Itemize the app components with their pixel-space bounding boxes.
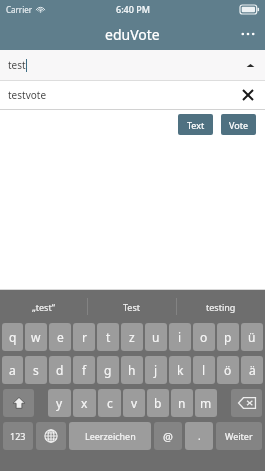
- staticText: u: [152, 329, 160, 345]
- staticText: b: [154, 395, 162, 411]
- staticText: Test: [123, 301, 141, 313]
- staticText: c: [107, 395, 113, 411]
- button[interactable]: l: [193, 356, 215, 384]
- button[interactable]: .: [185, 422, 213, 450]
- staticText: g: [104, 362, 112, 378]
- button[interactable]: testvote: [0, 81, 265, 109]
- button[interactable]: More options: [234, 20, 262, 48]
- staticText: .: [198, 429, 201, 443]
- button[interactable]: u: [145, 323, 167, 351]
- button[interactable]: m: [195, 389, 217, 417]
- staticText: ö: [224, 362, 232, 378]
- button[interactable]: Clear: [237, 84, 259, 106]
- button[interactable]: @: [154, 422, 182, 450]
- staticText: eduVote: [105, 25, 160, 44]
- button[interactable]: c: [98, 389, 121, 417]
- staticText: n: [178, 395, 186, 411]
- staticText: Carrier: [6, 4, 33, 15]
- staticText: l: [202, 362, 206, 378]
- button[interactable]: t: [97, 323, 119, 351]
- button[interactable]: e: [49, 323, 71, 351]
- button[interactable]: g: [97, 356, 119, 384]
- button[interactable]: 123: [3, 422, 33, 450]
- button[interactable]: i: [169, 323, 191, 351]
- button[interactable]: Weiter: [216, 422, 262, 450]
- staticText: h: [128, 362, 136, 378]
- button[interactable]: test: [0, 50, 265, 80]
- button[interactable]: „test“: [0, 290, 87, 323]
- staticText: 6:40 PM: [116, 3, 150, 15]
- staticText: d: [56, 362, 64, 378]
- staticText: j: [154, 362, 158, 378]
- staticText: @: [163, 429, 173, 444]
- button[interactable]: o: [193, 323, 215, 351]
- button[interactable]: Backspace: [231, 389, 262, 417]
- button[interactable]: w: [25, 323, 47, 351]
- button[interactable]: x: [73, 389, 96, 417]
- button[interactable]: j: [145, 356, 167, 384]
- button[interactable]: Change keyboard: [36, 422, 66, 450]
- button[interactable]: r: [73, 323, 95, 351]
- staticText: Vote: [229, 119, 248, 131]
- staticText: a: [9, 362, 16, 378]
- button[interactable]: Test: [88, 290, 176, 323]
- button[interactable]: ö: [217, 356, 239, 384]
- staticText: testing: [206, 301, 236, 313]
- button[interactable]: v: [123, 389, 145, 417]
- button[interactable]: z: [121, 323, 143, 351]
- button[interactable]: Vote: [221, 114, 256, 135]
- button[interactable]: testing: [177, 290, 265, 323]
- button[interactable]: Shift: [3, 389, 34, 417]
- button[interactable]: ü: [241, 323, 263, 351]
- button[interactable]: n: [171, 389, 193, 417]
- staticText: e: [57, 329, 64, 345]
- staticText: i: [178, 329, 182, 345]
- button[interactable]: d: [49, 356, 71, 384]
- staticText: ä: [249, 362, 256, 378]
- staticText: k: [177, 362, 184, 378]
- button[interactable]: h: [121, 356, 143, 384]
- staticText: z: [129, 329, 135, 345]
- staticText: w: [31, 329, 41, 345]
- staticText: Text: [187, 119, 205, 131]
- staticText: Weiter: [225, 430, 253, 442]
- button[interactable]: b: [147, 389, 169, 417]
- staticText: x: [81, 395, 88, 411]
- button[interactable]: s: [25, 356, 47, 384]
- button[interactable]: q: [2, 323, 23, 351]
- button[interactable]: ä: [241, 356, 263, 384]
- button[interactable]: Text: [178, 114, 213, 135]
- staticText: o: [200, 329, 208, 345]
- button[interactable]: y: [48, 389, 71, 417]
- staticText: s: [33, 362, 39, 378]
- button[interactable]: p: [217, 323, 239, 351]
- staticText: p: [224, 329, 232, 345]
- button[interactable]: k: [169, 356, 191, 384]
- button[interactable]: Leerzeichen: [69, 422, 151, 450]
- staticText: r: [82, 329, 87, 345]
- staticText: f: [82, 362, 87, 378]
- staticText: t: [106, 329, 111, 345]
- staticText: Leerzeichen: [85, 430, 136, 442]
- staticText: ü: [248, 329, 256, 345]
- staticText: y: [56, 395, 63, 411]
- staticText: m: [200, 395, 212, 411]
- staticText: testvote: [8, 88, 47, 102]
- staticText: test: [8, 58, 26, 72]
- button[interactable]: a: [2, 356, 23, 384]
- staticText: 123: [10, 430, 26, 442]
- button[interactable]: f: [73, 356, 95, 384]
- staticText: „test“: [32, 301, 55, 313]
- staticText: q: [9, 329, 17, 345]
- staticText: v: [131, 395, 138, 411]
